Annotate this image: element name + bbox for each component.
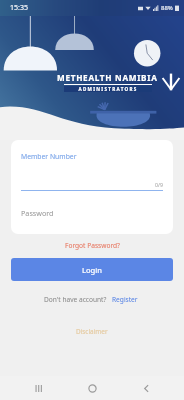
staticText: Disclaimer [76,327,108,336]
staticText: Don't have account? [44,295,107,304]
button[interactable]: Login [11,258,173,281]
staticText: 88% [161,4,173,12]
staticText: Password [21,208,54,218]
staticText: Forgot Password? [65,241,120,250]
button[interactable]: Password [21,205,163,221]
button[interactable]: Back [131,376,161,400]
button[interactable]: Register [110,294,140,305]
staticText: Register [112,295,138,304]
staticText: METHEALTH NAMIBIA [57,72,158,83]
button[interactable]: Member Number [21,152,163,190]
button[interactable]: Home [77,376,107,400]
button[interactable]: Disclaimer [72,326,112,337]
staticText: 0/9 [155,181,163,188]
button[interactable]: Forgot Password? [61,240,124,251]
staticText: Member Number [21,152,77,161]
staticText: Login [82,265,102,275]
button[interactable]: Recent apps [24,376,54,400]
staticText: ADMINISTRATORS [78,86,138,92]
staticText: 15:35 [10,3,28,13]
